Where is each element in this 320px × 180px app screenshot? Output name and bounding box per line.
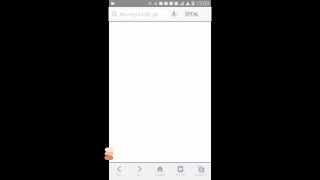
staticText: ✕ [148, 0, 152, 7]
button[interactable]: Ara veya URL gir [109, 10, 168, 19]
staticText: Anasayfa [155, 173, 165, 177]
button[interactable]: Anasayfa [150, 162, 170, 180]
button[interactable]: Sekmeler [191, 162, 211, 180]
staticText: ≼ [153, 0, 157, 7]
staticText: Yer İmi [176, 173, 185, 177]
staticText: Ara veya URL gir [119, 11, 158, 18]
button[interactable]: Geri [109, 162, 129, 180]
button[interactable]: İleri [129, 162, 150, 180]
button[interactable]: İPTAL [179, 9, 204, 20]
staticText: 15:09 [196, 0, 209, 7]
button[interactable]: Yer İmi [170, 162, 191, 180]
staticText: İleri [137, 173, 143, 177]
staticText: Sekmeler [195, 173, 207, 177]
staticText: İPTAL [185, 11, 199, 18]
button[interactable]: Sesli arama [168, 9, 179, 20]
staticText: Geri [116, 173, 122, 177]
